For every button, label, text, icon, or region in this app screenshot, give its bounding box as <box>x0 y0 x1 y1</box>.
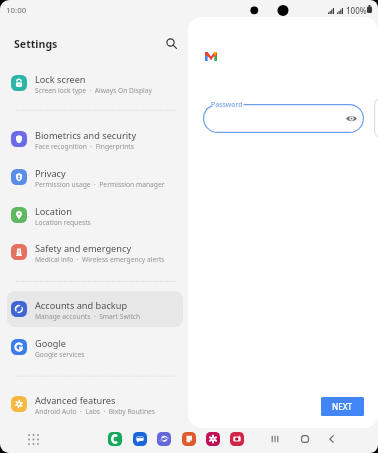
button[interactable]: Recents <box>264 428 286 450</box>
button[interactable]: App 6 <box>226 428 248 450</box>
button[interactable]: App 2 <box>129 428 151 450</box>
staticText: Manage accounts · Smart Switch <box>35 312 141 321</box>
button[interactable]: Location <box>7 197 183 233</box>
button[interactable]: Back <box>321 428 343 450</box>
staticText: Password <box>211 100 243 110</box>
button[interactable]: Safety and emergency <box>7 234 183 270</box>
staticText: 100% <box>346 5 367 16</box>
staticText: Screen lock type · Always On Display <box>35 86 152 95</box>
button[interactable]: App 5 <box>202 428 224 450</box>
staticText: Accounts and backup <box>35 299 128 312</box>
button[interactable]: Advanced features <box>7 386 183 422</box>
button[interactable]: App 3 <box>153 428 175 450</box>
button[interactable]: Privacy <box>7 159 183 195</box>
staticText: Biometrics and security <box>35 129 137 142</box>
button[interactable]: Apps <box>24 430 42 448</box>
button[interactable]: Show password <box>345 113 357 124</box>
button[interactable]: Google <box>7 329 183 365</box>
staticText: Google <box>35 337 67 350</box>
staticText: Face recognition · Fingerprints <box>35 142 134 151</box>
button[interactable]: Search <box>163 35 180 52</box>
button[interactable]: Lock screen <box>7 65 183 101</box>
staticText: Advanced features <box>35 394 116 407</box>
staticText: Safety and emergency <box>35 242 132 255</box>
button[interactable]: App 4 <box>178 428 200 450</box>
staticText: Google services <box>35 350 85 359</box>
staticText: Lock screen <box>35 73 86 86</box>
staticText: 10:00 <box>6 5 27 16</box>
staticText: Location requests <box>35 218 91 227</box>
staticText: NEXT <box>332 401 353 412</box>
staticText: Privacy <box>35 167 66 180</box>
button[interactable]: Home <box>294 428 316 450</box>
button[interactable]: App 1 <box>104 428 126 450</box>
staticText: Android Auto · Labs · Bixby Routines <box>35 407 156 416</box>
button[interactable]: Accounts and backup <box>7 291 183 327</box>
staticText: Location <box>35 205 72 218</box>
staticText: Permission usage · Permission manager <box>35 180 165 189</box>
staticText: Medical info · Wireless emergency alerts <box>35 255 165 264</box>
button[interactable]: NEXT <box>321 397 364 416</box>
staticText: Settings <box>14 37 58 51</box>
button[interactable]: Biometrics and security <box>7 121 183 157</box>
